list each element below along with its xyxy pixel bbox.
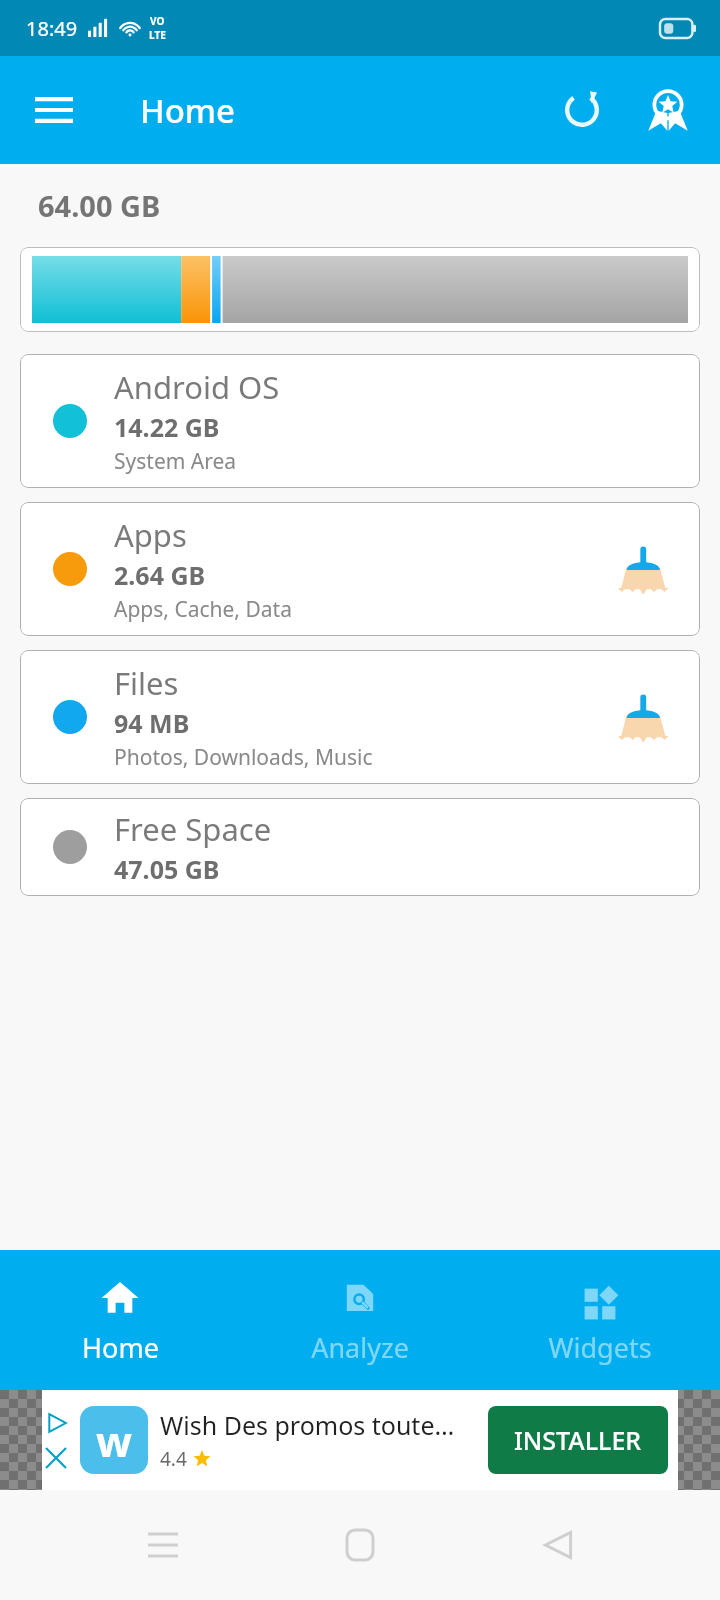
button[interactable]: Files [20,650,700,784]
button[interactable]: Clean Files [606,682,676,752]
button[interactable]: Premium award [636,78,700,142]
button[interactable] [20,247,700,332]
button[interactable]: Refresh [550,78,614,142]
staticText: VO [150,14,165,28]
button[interactable]: Android OS [20,354,700,488]
button[interactable]: Analyze [240,1250,480,1390]
button[interactable]: Widgets [480,1250,720,1390]
staticText: 2.64 GB [114,558,206,592]
staticText: 94 MB [114,706,190,740]
staticText: Free Space [114,808,272,850]
button[interactable]: Back [523,1510,593,1580]
staticText: 64.00 GB [38,186,161,225]
staticText: 14.22 GB [114,410,220,444]
staticText: 47.05 GB [114,852,220,886]
staticText: Wish Des promos toute… [160,1408,455,1442]
button[interactable]: w [42,1390,678,1490]
staticText: Widgets [548,1329,652,1366]
staticText: Files [114,662,179,704]
staticText: System Area [114,447,237,476]
staticText: Android OS [114,366,280,408]
staticText: Home [82,1329,159,1366]
button[interactable]: Home [0,1250,240,1390]
staticText: Analyze [311,1329,409,1366]
button[interactable]: INSTALLER [488,1406,668,1474]
button[interactable]: Apps [20,502,700,636]
button[interactable]: Open navigation menu [24,80,84,140]
staticText: INSTALLER [514,1423,642,1457]
staticText: Apps, Cache, Data [114,595,292,624]
button[interactable]: Free Space [20,798,700,896]
staticText: Home [140,88,236,133]
button[interactable]: Home [325,1510,395,1580]
staticText: 18:49 [26,15,78,42]
staticText: LTE [149,28,166,42]
staticText: Photos, Downloads, Music [114,743,373,772]
staticText: Apps [114,514,187,556]
staticText: w [96,1412,132,1469]
button[interactable]: Recent apps [128,1510,198,1580]
button[interactable]: Clean Apps [606,534,676,604]
staticText: 4.4 [160,1446,187,1472]
